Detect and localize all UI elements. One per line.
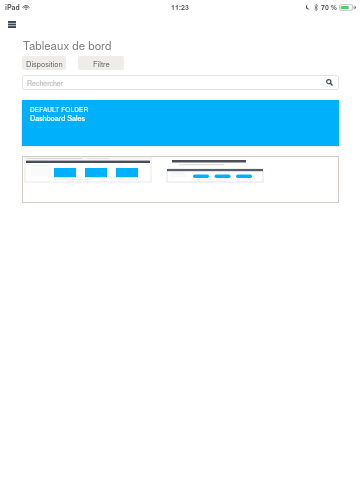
staticText: Tableaux de bord <box>23 37 112 53</box>
button[interactable]: DEFAULT FOLDER <box>22 100 339 146</box>
button[interactable]: Search <box>324 76 335 89</box>
button[interactable]: Rechercher <box>22 75 339 90</box>
staticText: Dashboard Sales <box>30 113 86 123</box>
button[interactable]: Filtre <box>78 56 124 70</box>
staticText: DEFAULT FOLDER <box>30 105 89 114</box>
button[interactable]: Disposition <box>22 56 66 70</box>
staticText: Disposition <box>26 58 63 69</box>
button[interactable]: Menu <box>2 16 22 32</box>
staticText: 11:23 <box>171 2 189 12</box>
button[interactable] <box>22 156 339 203</box>
staticText: Filtre <box>93 58 110 69</box>
staticText: Rechercher <box>27 78 64 88</box>
staticText: iPad <box>5 2 20 12</box>
staticText: 70 % <box>321 2 337 12</box>
